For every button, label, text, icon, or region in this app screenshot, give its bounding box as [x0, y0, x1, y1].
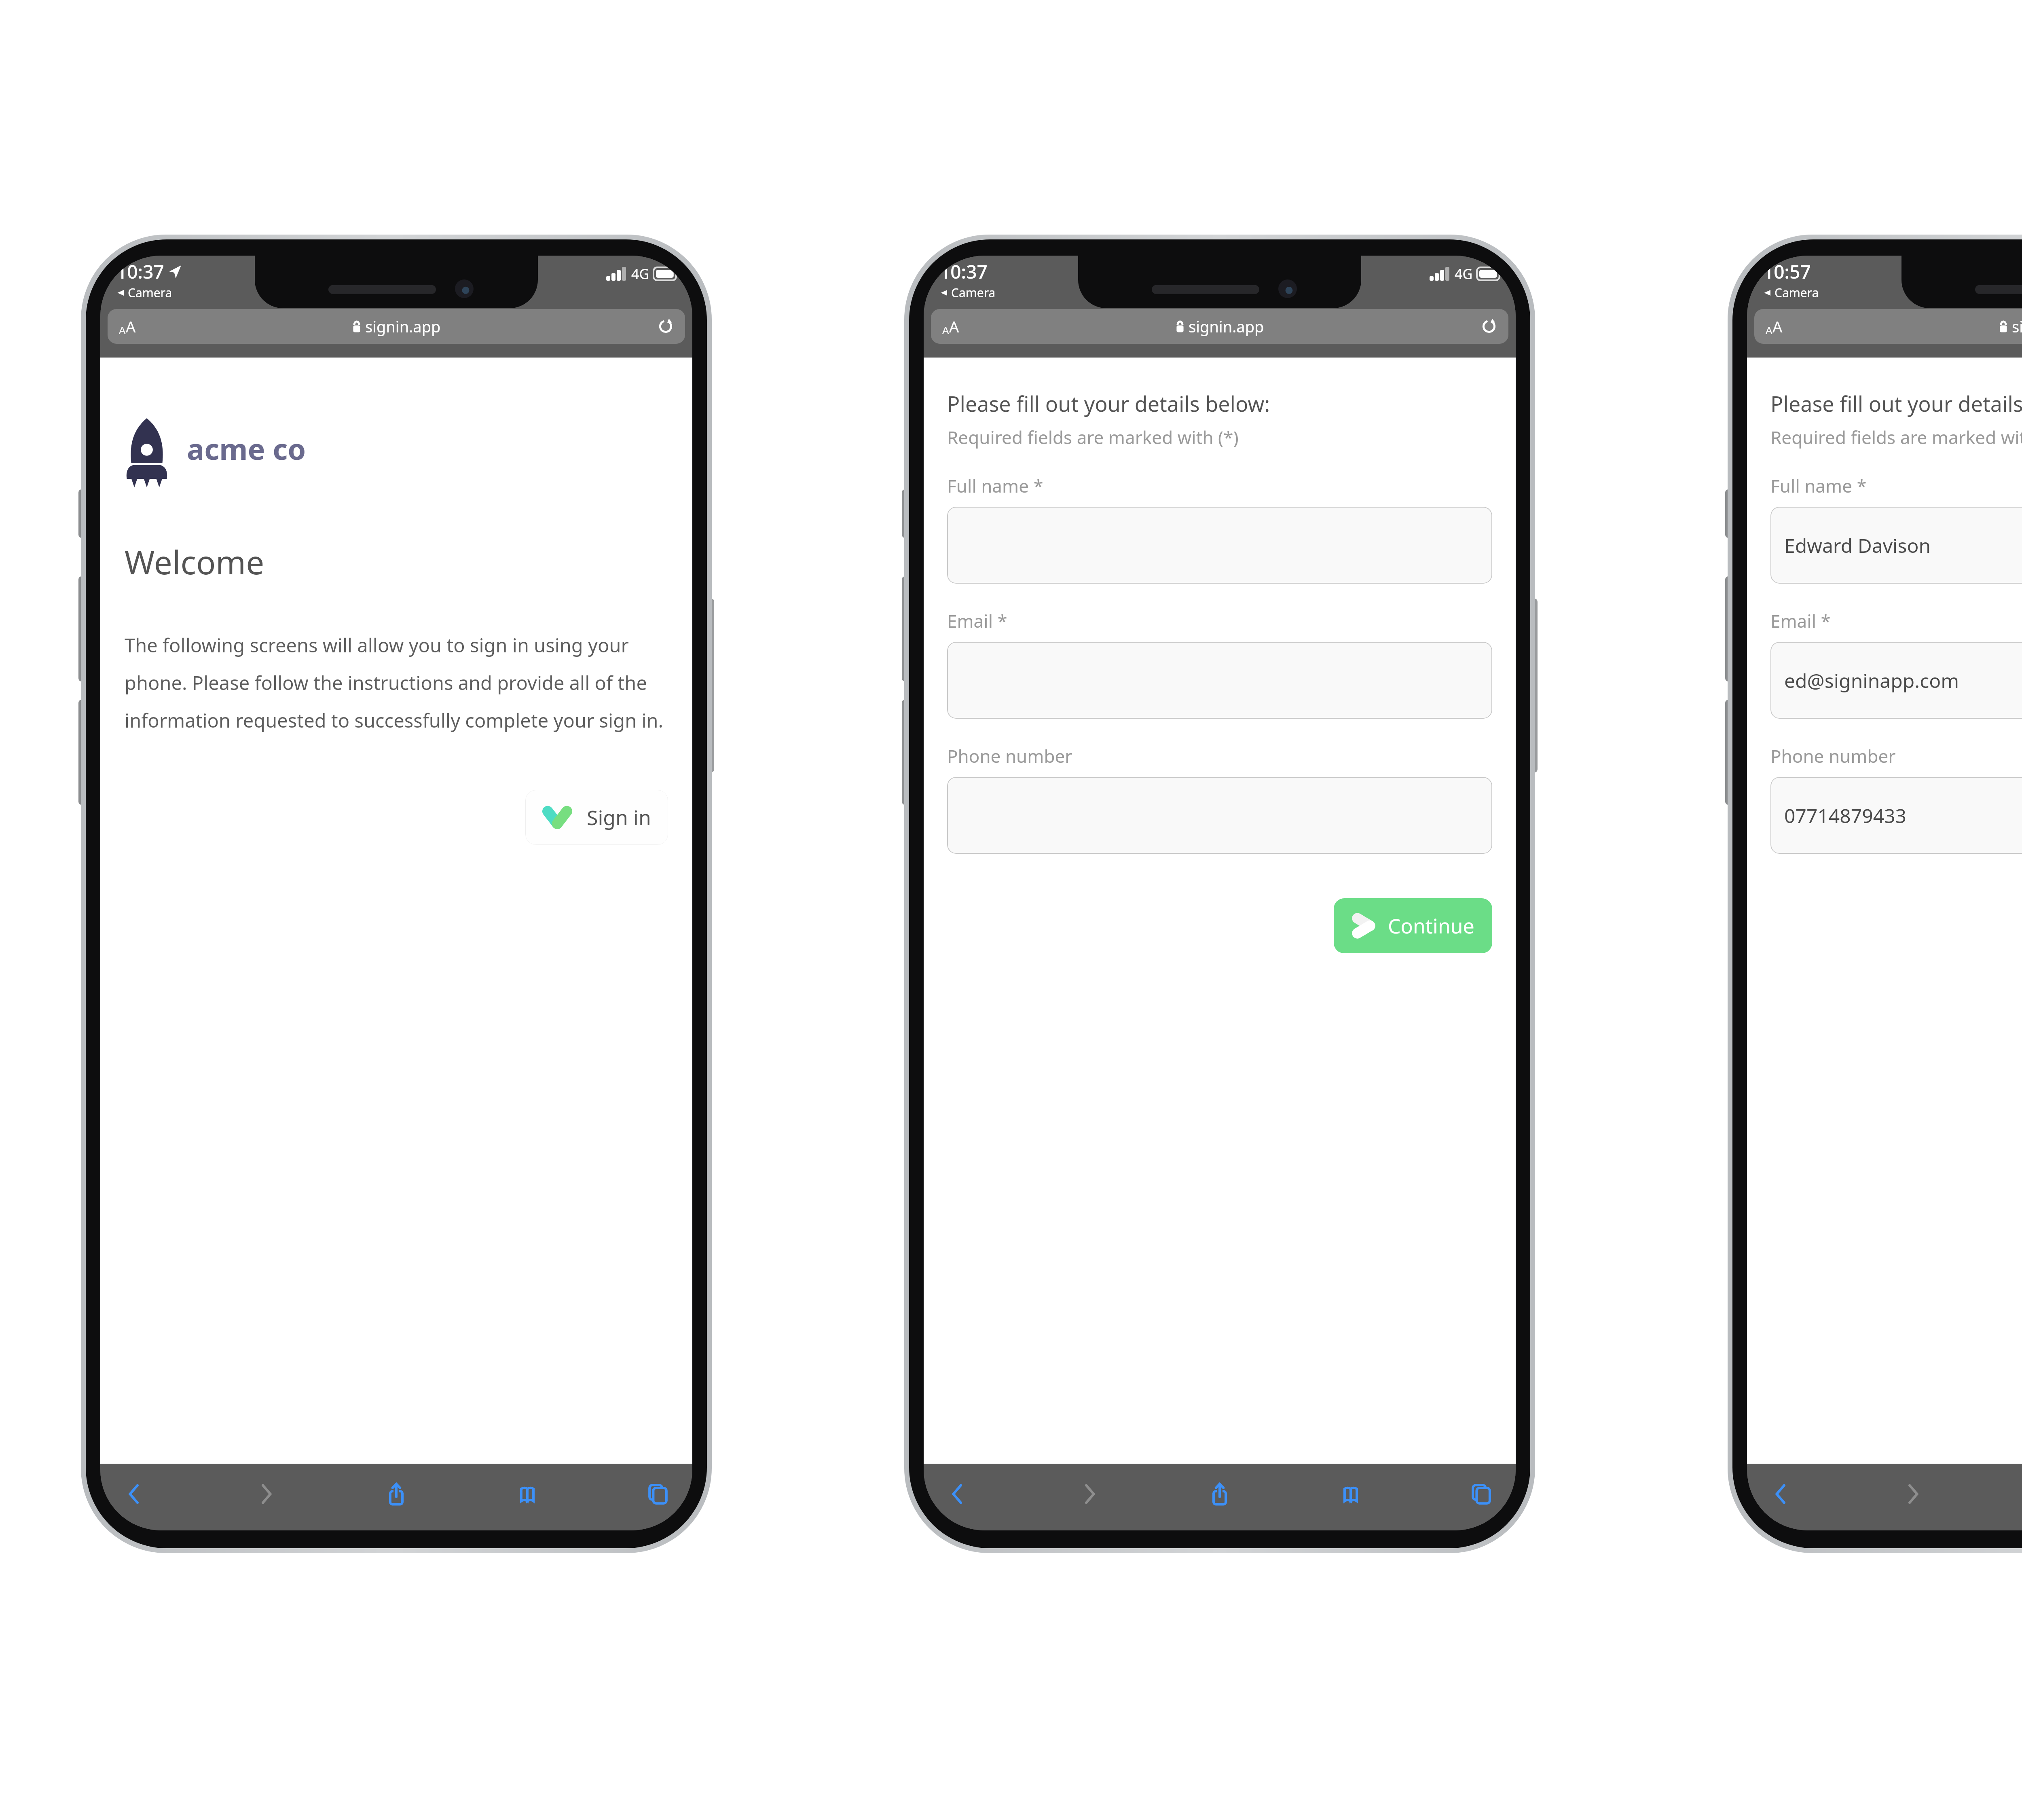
button[interactable]: Bookmarks	[509, 1476, 546, 1512]
staticText: Please fill out your details below:	[1770, 389, 2022, 418]
staticText: A	[1766, 323, 1772, 337]
staticText: Please fill out your details below:	[947, 389, 1270, 418]
button[interactable]: Reload	[1480, 317, 1498, 335]
staticText: 10:57	[1763, 259, 1811, 284]
button[interactable]: Back	[116, 1476, 153, 1512]
button[interactable]	[947, 642, 1492, 719]
staticText: 07714879433	[1784, 802, 1907, 829]
button[interactable]: 07714879433	[1770, 777, 2022, 854]
staticText: Welcome	[125, 540, 264, 584]
button[interactable]: Back	[1763, 1476, 1800, 1512]
staticText: Email *	[947, 609, 1007, 633]
staticText: Continue	[1388, 912, 1474, 940]
staticText: A	[1772, 316, 1783, 337]
button[interactable]: ed@signinapp.com	[1770, 642, 2022, 719]
staticText: Phone number	[1770, 744, 1896, 768]
staticText: 10:37	[116, 259, 164, 284]
button[interactable]: Reload	[657, 317, 675, 335]
staticText: Email *	[1770, 609, 1831, 633]
button[interactable]: Tabs	[640, 1476, 676, 1512]
button[interactable]: Share	[1201, 1476, 1238, 1512]
staticText: Camera	[128, 284, 172, 301]
button[interactable]: Tabs	[1463, 1476, 1500, 1512]
staticText: signin.app	[2012, 316, 2022, 337]
button[interactable]: Share	[378, 1476, 415, 1512]
staticText: 4G	[631, 265, 649, 283]
button[interactable]	[947, 777, 1492, 854]
button[interactable]: Forward	[1894, 1476, 1931, 1512]
button[interactable]: Bookmarks	[1332, 1476, 1369, 1512]
staticText: acme co	[187, 429, 306, 468]
button[interactable]: Continue	[1334, 898, 1492, 953]
staticText: 4G	[1455, 265, 1473, 283]
staticText: A	[942, 323, 949, 337]
staticText: Full name *	[1770, 474, 1867, 498]
staticText: The following screens will allow you to …	[125, 632, 668, 733]
button[interactable]: A	[931, 309, 1508, 344]
staticText: A	[126, 316, 136, 337]
staticText: signin.app	[1189, 316, 1264, 337]
staticText: A	[949, 316, 959, 337]
staticText: Sign in	[587, 804, 651, 831]
staticText: Required fields are marked with (*)	[947, 425, 1239, 449]
staticText: Phone number	[947, 744, 1072, 768]
button[interactable]: A	[108, 309, 685, 344]
button[interactable]: A	[1754, 309, 2022, 344]
staticText: signin.app	[365, 316, 441, 337]
button[interactable]: Back	[940, 1476, 976, 1512]
staticText: ed@signinapp.com	[1784, 667, 1959, 694]
staticText: Edward Davison	[1784, 532, 1931, 559]
button[interactable]: Forward	[1071, 1476, 1107, 1512]
staticText: 10:37	[940, 259, 988, 284]
button[interactable]	[947, 507, 1492, 584]
staticText: Camera	[951, 284, 996, 301]
button[interactable]: Forward	[247, 1476, 284, 1512]
staticText: Camera	[1775, 284, 1819, 301]
button[interactable]: Sign in	[525, 790, 668, 845]
staticText: Full name *	[947, 474, 1043, 498]
staticText: A	[119, 323, 126, 337]
button[interactable]: Edward Davison	[1770, 507, 2022, 584]
staticText: Required fields are marked with (*)	[1770, 425, 2022, 449]
